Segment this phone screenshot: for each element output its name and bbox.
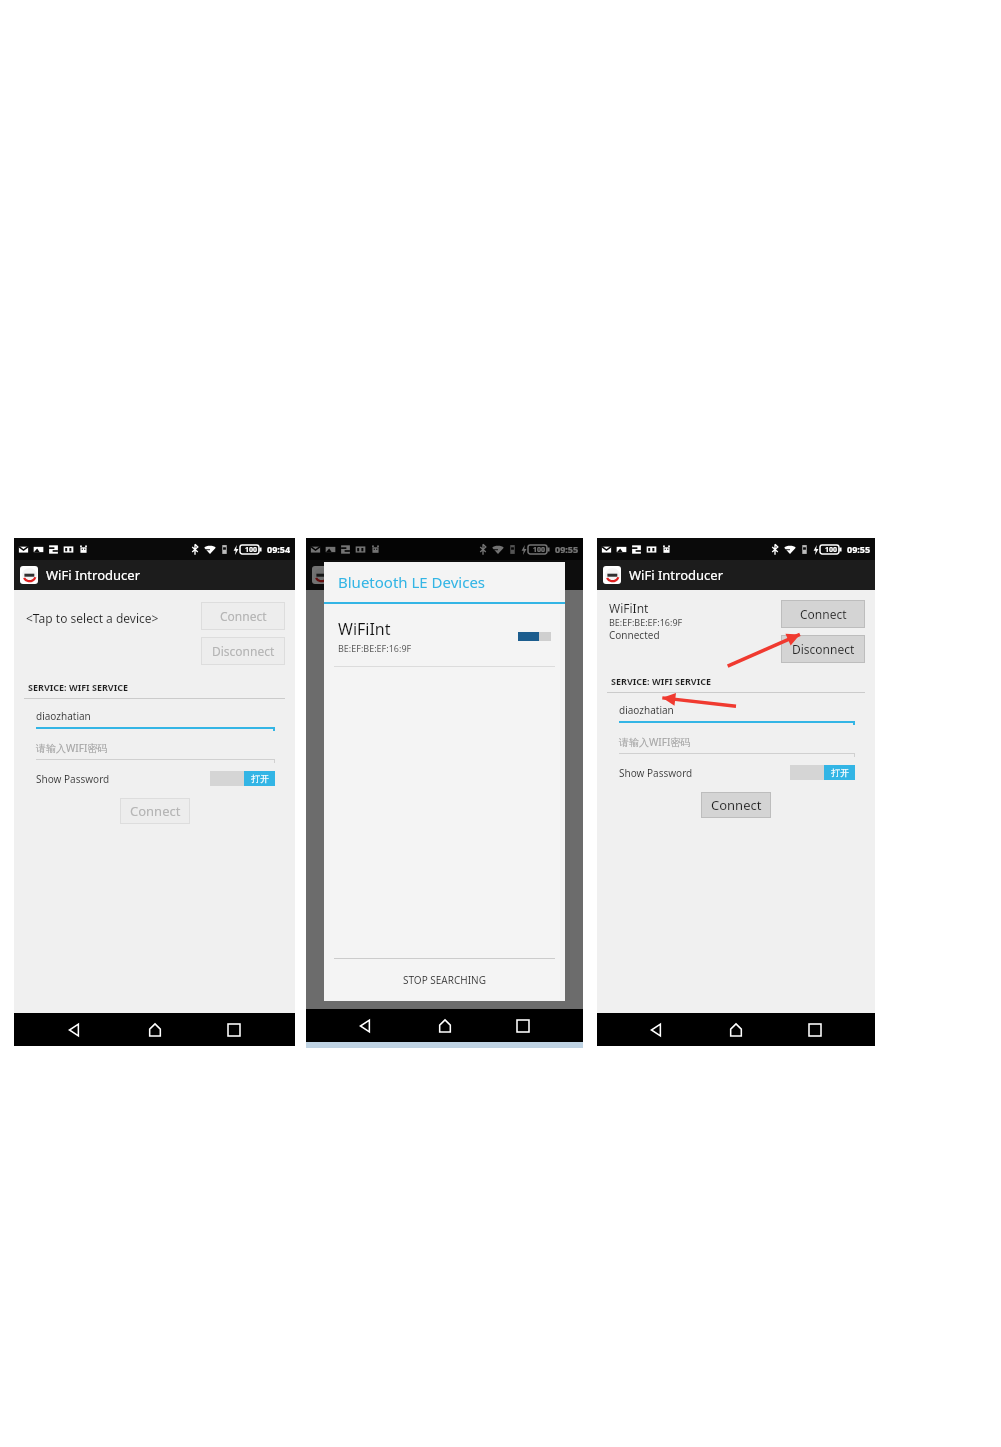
staticText: Disconnect [212,643,275,659]
button[interactable]: 请输入WIFI密码 [36,741,275,763]
staticText: 打开 [831,767,849,778]
button[interactable]: diaozhatian [619,703,855,725]
button[interactable]: diaozhatian [36,709,275,731]
staticText: 09:55 [847,543,871,555]
button[interactable]: Home [426,1009,464,1042]
button[interactable]: Connect [701,792,771,818]
staticText: WiFi Introducer [338,566,433,584]
staticText: Connect [800,606,847,622]
button[interactable]: Back [56,1013,94,1046]
button[interactable]: App icon [603,566,621,584]
staticText: WiFiInt [338,618,391,640]
button[interactable]: Back [347,1009,385,1042]
button[interactable]: WiFiInt [609,600,781,642]
staticText: Connect [220,608,267,624]
staticText: 请输入WIFI密码 [36,741,108,755]
staticText: Show Password [619,766,790,780]
button[interactable]: Home [717,1013,755,1046]
staticText: 打开 [251,773,269,784]
button[interactable]: <Tap to select a device> [26,610,201,626]
button[interactable]: Connect [120,798,190,824]
staticText: SERVICE: WIFI SERVICE [611,675,711,687]
staticText: 09:54 [267,543,291,555]
staticText: 09:55 [555,543,579,555]
staticText: diaozhatian [36,709,91,723]
staticText: WiFi Introducer [629,566,724,584]
button[interactable]: Connect [781,600,865,628]
button[interactable]: 请输入WIFI密码 [619,735,855,757]
staticText: Connect [711,796,762,814]
staticText: Connect [130,802,181,820]
button[interactable]: Show password toggle [210,771,275,786]
staticText: WiFi Introducer [46,566,141,584]
staticText: diaozhatian [619,703,674,717]
staticText: SERVICE: WIFI SERVICE [28,681,128,693]
staticText: 请输入WIFI密码 [619,735,691,749]
button[interactable]: Recents [504,1009,542,1042]
staticText: WiFiInt [609,600,649,616]
button[interactable]: Disconnect [201,637,285,665]
button[interactable]: Disconnect [781,635,865,663]
button[interactable]: Recents [215,1013,253,1046]
button[interactable]: Home [136,1013,174,1046]
button[interactable]: Connect [201,602,285,630]
button[interactable]: WiFiInt [324,614,565,658]
button[interactable]: STOP SEARCHING [324,959,565,1001]
button[interactable]: Recents [796,1013,834,1046]
button[interactable]: Show password toggle [790,765,855,780]
staticText: Bluetooth LE Devices [338,572,486,592]
staticText: 100 [245,545,258,555]
staticText: Connected [609,628,660,642]
staticText: BE:EF:BE:EF:16:9F [609,616,683,628]
staticText: 100 [825,545,838,555]
staticText: Disconnect [792,641,855,657]
button[interactable]: App icon [20,566,38,584]
staticText: BE:EF:BE:EF:16:9F [338,642,412,654]
button[interactable]: Back [638,1013,676,1046]
button[interactable]: App icon [312,566,330,584]
staticText: Show Password [36,772,210,786]
staticText: STOP SEARCHING [403,973,486,987]
staticText: 100 [533,545,546,555]
